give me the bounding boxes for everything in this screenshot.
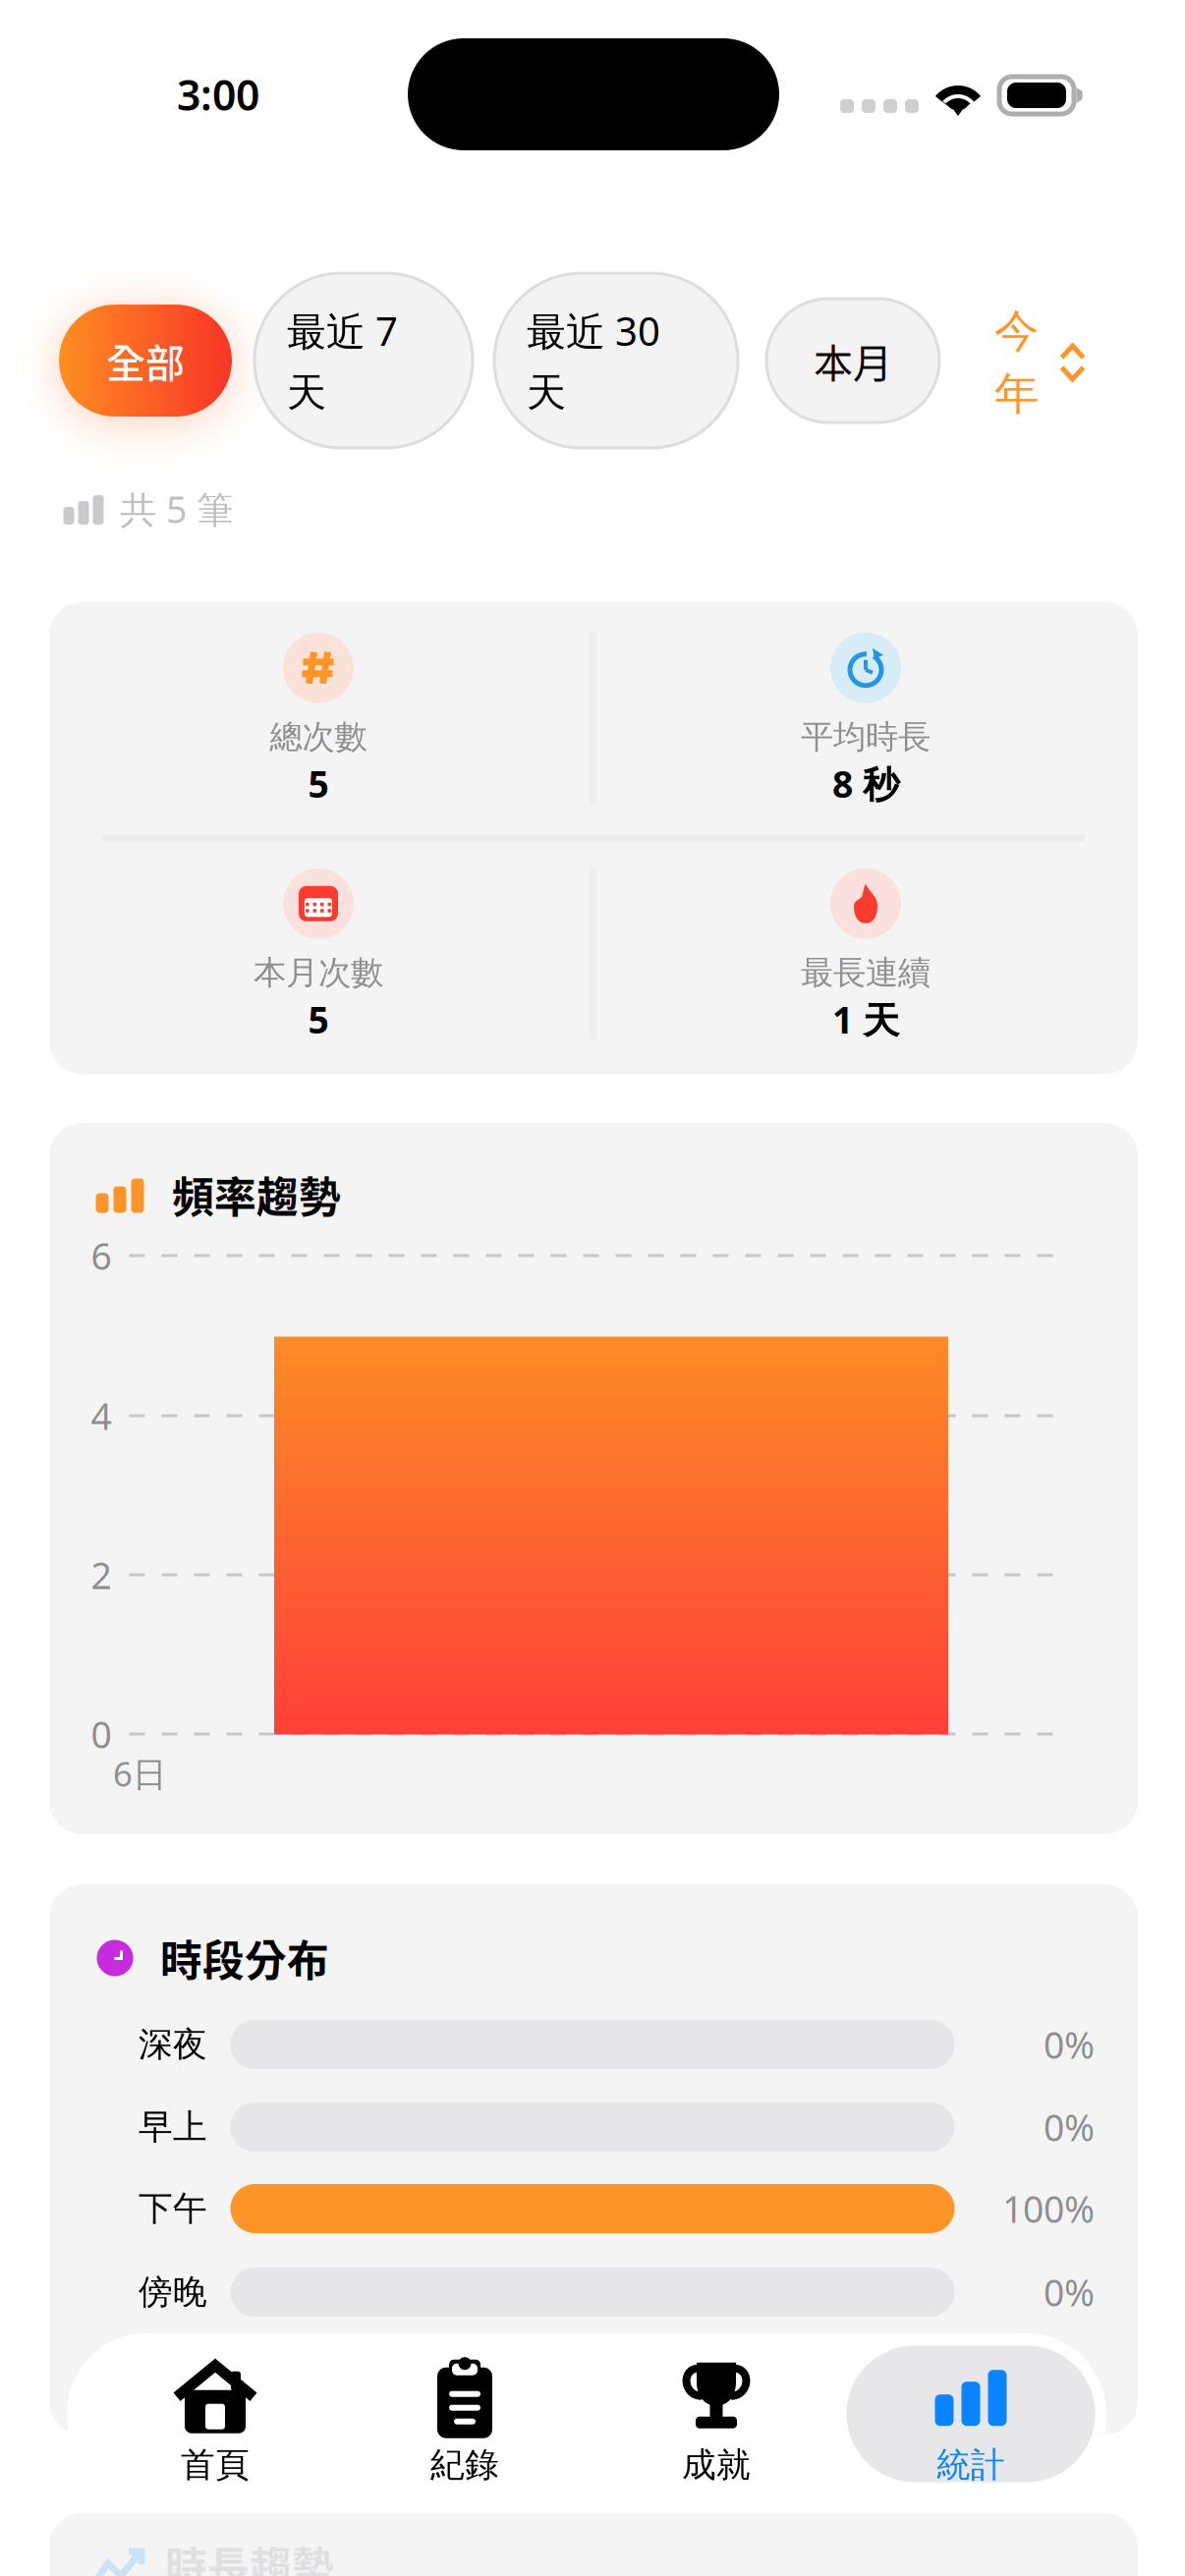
staticText: 年 bbox=[994, 366, 1039, 421]
button[interactable]: 紀錄 bbox=[340, 2346, 589, 2482]
staticText: 成就 bbox=[682, 2444, 751, 2486]
staticText: 6日 bbox=[113, 1751, 167, 1796]
button[interactable]: 全部 bbox=[59, 305, 232, 417]
button[interactable]: 本月 bbox=[766, 299, 939, 422]
staticText: 5 bbox=[308, 995, 329, 1044]
staticText: 平均時長 bbox=[801, 717, 931, 757]
staticText: 統計 bbox=[936, 2444, 1005, 2486]
staticText: 0% bbox=[1044, 2268, 1095, 2316]
staticText: 最近 30 bbox=[527, 304, 660, 357]
staticText: 0 bbox=[91, 1710, 112, 1758]
staticText: 2 bbox=[91, 1551, 112, 1599]
staticText: 最近 7 bbox=[287, 304, 398, 357]
staticText: 總次數 bbox=[270, 717, 367, 757]
staticText: 本月 bbox=[814, 332, 892, 389]
staticText: 時段分布 bbox=[160, 1928, 329, 1988]
button[interactable]: 首頁 bbox=[91, 2346, 339, 2482]
staticText: 早上 bbox=[139, 2106, 207, 2148]
staticText: 4 bbox=[91, 1391, 112, 1440]
staticText: 100% bbox=[1002, 2184, 1095, 2233]
staticText: 8 秒 bbox=[832, 759, 899, 808]
staticText: 今 bbox=[994, 304, 1039, 359]
staticText: 0% bbox=[1044, 2020, 1095, 2069]
staticText: 共 5 筆 bbox=[120, 485, 233, 533]
staticText: 1 天 bbox=[832, 995, 899, 1044]
staticText: 首頁 bbox=[181, 2444, 250, 2486]
staticText: 頻率趨勢 bbox=[172, 1164, 341, 1225]
staticText: 傍晚 bbox=[139, 2271, 207, 2313]
staticText: 全部 bbox=[106, 332, 185, 389]
staticText: 深夜 bbox=[139, 2024, 207, 2065]
staticText: 最長連續 bbox=[801, 953, 931, 993]
staticText: 時長趨勢 bbox=[165, 2534, 334, 2576]
staticText: 下午 bbox=[139, 2188, 207, 2229]
staticText: 天 bbox=[527, 368, 566, 417]
staticText: 本月次數 bbox=[254, 953, 383, 993]
staticText: 0% bbox=[1044, 2103, 1095, 2151]
staticText: 3:00 bbox=[177, 67, 259, 122]
button[interactable]: 今 bbox=[990, 304, 1089, 421]
staticText: 6 bbox=[91, 1231, 112, 1280]
button[interactable]: 最近 30 bbox=[494, 273, 738, 448]
staticText: 天 bbox=[287, 368, 326, 417]
staticText: 5 bbox=[308, 759, 329, 808]
button[interactable]: 最近 7 bbox=[254, 273, 473, 448]
button[interactable]: 統計 bbox=[846, 2346, 1095, 2482]
staticText: 紀錄 bbox=[430, 2444, 499, 2486]
button[interactable]: 成就 bbox=[592, 2346, 841, 2482]
